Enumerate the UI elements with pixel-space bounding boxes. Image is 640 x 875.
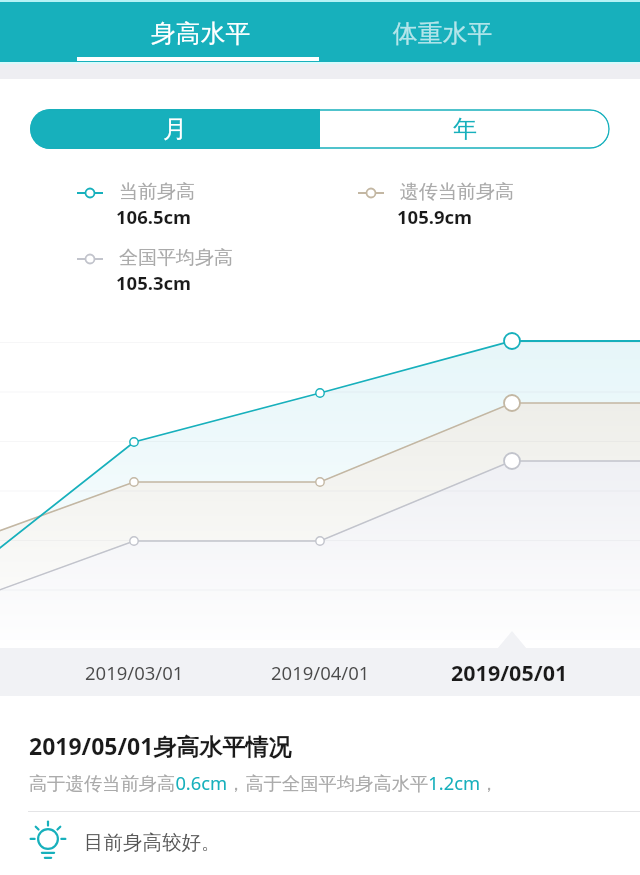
button[interactable]: 身高水平 xyxy=(80,0,322,62)
staticText: 体重水平 xyxy=(393,18,493,49)
staticText: 2019/05/01身高水平情况 xyxy=(29,730,292,761)
staticText: 高于遗传当前身高0.6cm，高于全国平均身高水平1.2cm， xyxy=(29,770,499,795)
staticText: 目前身高较好。 xyxy=(84,830,221,855)
button[interactable]: 年 xyxy=(320,109,610,149)
staticText: 106.5cm xyxy=(116,204,192,229)
staticText: 全国平均身高 xyxy=(119,246,233,270)
button[interactable]: 体重水平 xyxy=(322,0,564,62)
other: Tip xyxy=(29,823,67,861)
staticText: 当前身高 xyxy=(119,180,195,204)
staticText: 年 xyxy=(453,114,477,144)
staticText: 105.3cm xyxy=(116,270,192,295)
staticText: 遗传当前身高 xyxy=(400,180,514,204)
staticText: 月 xyxy=(163,114,187,144)
button[interactable]: 月 xyxy=(30,109,320,149)
button[interactable]: Tip xyxy=(0,812,640,872)
staticText: 2019/04/01 xyxy=(271,660,370,685)
staticText: 2019/03/01 xyxy=(85,660,184,685)
staticText: 105.9cm xyxy=(397,204,473,229)
staticText: 2019/05/01 xyxy=(451,658,568,687)
staticText: 身高水平 xyxy=(151,18,251,49)
